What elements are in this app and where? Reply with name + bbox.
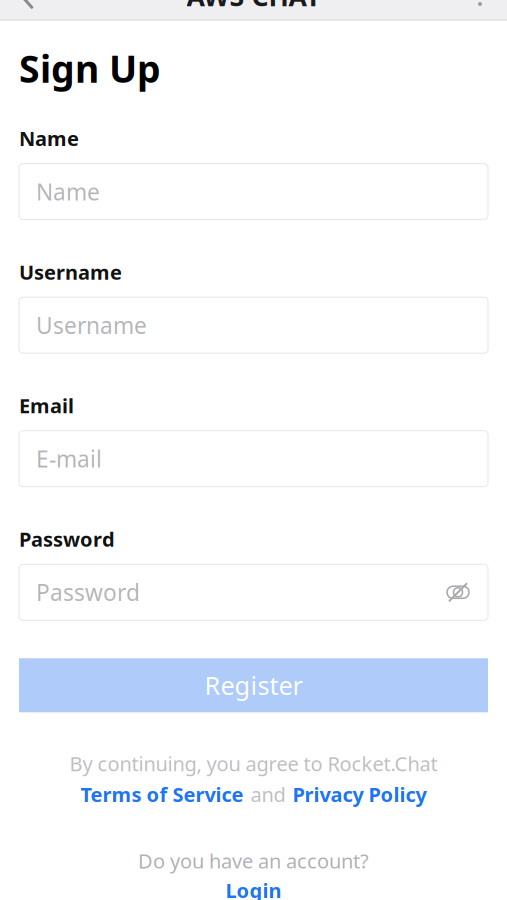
staticText: Name: [36, 177, 100, 207]
button[interactable]: Privacy Policy: [292, 781, 426, 807]
staticText: Email: [19, 392, 74, 419]
staticText: Sign Up: [19, 43, 161, 93]
staticText: Privacy Policy: [292, 781, 426, 807]
button[interactable]: Show password: [440, 574, 476, 610]
staticText: Username: [36, 310, 147, 340]
staticText: E-mail: [36, 444, 102, 474]
staticText: Name: [19, 125, 79, 152]
staticText: Login: [225, 877, 281, 900]
staticText: Terms of Service: [80, 781, 243, 807]
staticText: AWS CHAT: [186, 0, 320, 14]
button[interactable]: Login: [225, 877, 281, 900]
button[interactable]: Back: [0, 0, 54, 20]
staticText: and: [250, 781, 285, 807]
staticText: Password: [19, 526, 115, 552]
button[interactable]: Register: [19, 658, 488, 712]
staticText: Register: [204, 668, 302, 702]
staticText: Username: [19, 259, 122, 285]
staticText: Do you have an account?: [138, 847, 369, 874]
staticText: By continuing, you agree to Rocket.Chat: [69, 750, 437, 777]
staticText: Password: [36, 577, 140, 607]
button[interactable]: Terms of Service: [80, 781, 243, 807]
button[interactable]: More options: [453, 0, 507, 20]
